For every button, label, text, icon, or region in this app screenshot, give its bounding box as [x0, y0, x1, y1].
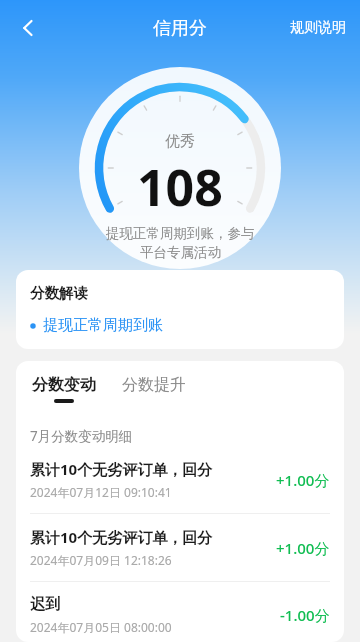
staticText: 2024年07月05日 08:00:00	[30, 619, 172, 635]
staticText: +1.00分	[276, 538, 330, 558]
staticText: 迟到	[30, 595, 60, 614]
button[interactable]: 分数变动	[30, 375, 98, 403]
staticText: 累计10个无劣评订单，回分	[30, 459, 213, 479]
button[interactable]: 分数提升	[120, 375, 188, 395]
staticText: 分数变动	[32, 375, 96, 395]
staticText: 规则说明	[290, 19, 346, 37]
button[interactable]: 分数解读	[16, 270, 344, 349]
staticText: 分数解读	[30, 284, 88, 302]
staticText: 7月分数变动明细	[30, 427, 133, 445]
staticText: 信用分	[153, 17, 207, 40]
staticText: 提现正常周期到账	[43, 316, 163, 335]
button[interactable]: 累计10个无劣评订单，回分	[16, 527, 344, 595]
staticText: 优秀	[165, 132, 195, 151]
staticText: 累计10个无劣评订单，回分	[30, 527, 213, 547]
staticText: 2024年07月12日 09:10:41	[30, 484, 172, 500]
staticText: 平台专属活动	[140, 244, 221, 261]
button[interactable]: 累计10个无劣评订单，回分	[16, 459, 344, 527]
button[interactable]: 迟到	[16, 595, 344, 642]
button[interactable]: Back	[6, 6, 50, 50]
staticText: 2024年07月09日 12:18:26	[30, 552, 172, 568]
staticText: 分数提升	[122, 375, 186, 395]
staticText: 提现正常周期到账，参与	[106, 225, 255, 242]
staticText: 108	[137, 153, 223, 221]
staticText: -1.00分	[280, 605, 330, 625]
staticText: +1.00分	[276, 470, 330, 490]
button[interactable]: 规则说明	[276, 9, 360, 47]
